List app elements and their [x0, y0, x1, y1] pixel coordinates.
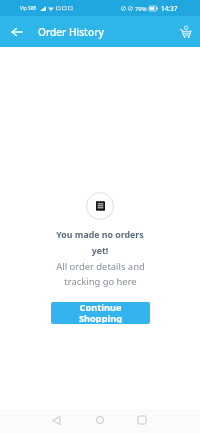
button[interactable]: Continue Shopping — [51, 302, 150, 324]
staticText: Order History — [38, 25, 104, 39]
button[interactable]: Shopping cart — [176, 23, 194, 41]
staticText: 14:37 — [161, 4, 178, 13]
staticText: 79% — [135, 5, 147, 13]
staticText: Continue Shopping — [79, 302, 122, 323]
button[interactable]: Home — [89, 409, 111, 431]
staticText: All order details and tracking go here — [56, 260, 145, 288]
button[interactable]: Back — [45, 409, 67, 431]
button[interactable]: Back — [8, 23, 25, 40]
staticText: You made no orders yet! — [56, 229, 144, 256]
staticText: Vip SRB — [20, 5, 37, 11]
button[interactable]: Recent apps — [131, 409, 153, 431]
